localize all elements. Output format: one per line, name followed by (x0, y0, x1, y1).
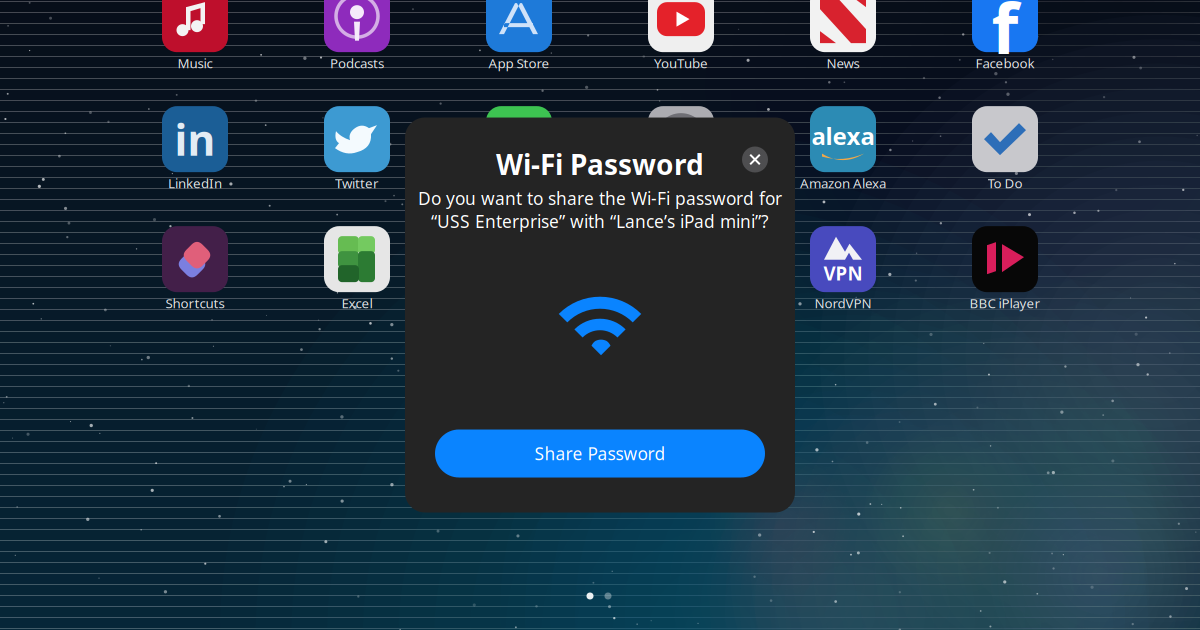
staticText: Shortcuts (165, 294, 224, 312)
staticText: “USS Enterprise” with “Lance’s iPad mini… (431, 210, 769, 233)
staticText: To Do (987, 174, 1022, 192)
staticText: News (826, 54, 859, 72)
button[interactable]: Share Password (435, 429, 765, 477)
staticText: BBC iPlayer (969, 294, 1040, 312)
staticText: Facebook (975, 54, 1034, 72)
button[interactable]: Music (114, 0, 276, 71)
staticText: Music (177, 54, 212, 72)
staticText: Share Password (534, 442, 665, 465)
button[interactable]: Shortcuts (114, 227, 276, 311)
button[interactable]: Excel (276, 227, 438, 311)
button[interactable]: in (114, 107, 276, 191)
button[interactable]: BBC iPlayer (924, 227, 1086, 311)
staticText: Wi-Fi Password (496, 145, 704, 183)
button[interactable] (600, 107, 762, 191)
staticText: App Store (488, 54, 549, 72)
staticText: alexa (811, 120, 874, 152)
staticText: Do you want to share the Wi-Fi password … (418, 187, 782, 210)
staticText: Excel (341, 294, 372, 312)
button[interactable]: f (924, 0, 1086, 71)
button[interactable]: Podcasts (276, 0, 438, 71)
staticText: Podcasts (330, 54, 384, 72)
button[interactable]: YouTube (600, 0, 762, 71)
staticText: YouTube (654, 54, 708, 72)
staticText: Amazon Alexa (800, 174, 886, 192)
button[interactable]: News (762, 0, 924, 71)
button[interactable]: Close (738, 142, 772, 176)
staticText: f (991, 0, 1018, 73)
staticText: NordVPN (814, 294, 871, 312)
button[interactable]: App Store (438, 0, 600, 71)
button[interactable]: Twitter (276, 107, 438, 191)
button[interactable] (438, 107, 600, 191)
staticText: LinkedIn (168, 174, 222, 192)
staticText: VPN (823, 261, 862, 286)
button[interactable]: VPN (762, 227, 924, 311)
staticText: Twitter (335, 174, 379, 192)
button[interactable]: alexa (762, 107, 924, 191)
button[interactable]: To Do (924, 107, 1086, 191)
staticText: in (174, 111, 215, 167)
